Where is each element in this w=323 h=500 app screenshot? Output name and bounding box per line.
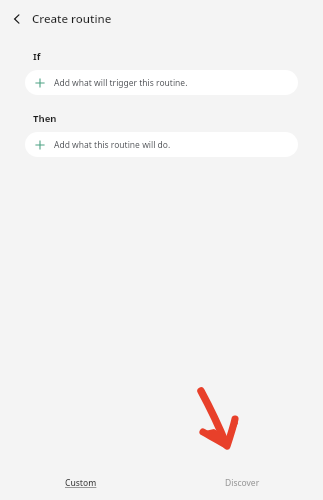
staticText: Discover (225, 477, 260, 489)
button[interactable]: Custom (0, 466, 161, 500)
staticText: Then (33, 112, 57, 125)
staticText: Add what will trigger this routine. (54, 77, 188, 89)
button[interactable]: Back (6, 8, 28, 30)
staticText: Create routine (32, 11, 112, 27)
button[interactable]: Add what will trigger this routine. (25, 70, 298, 95)
staticText: Custom (65, 477, 97, 489)
button[interactable]: Discover (161, 466, 323, 500)
button[interactable]: Add what this routine will do. (25, 132, 298, 157)
staticText: If (33, 50, 41, 63)
staticText: Add what this routine will do. (54, 139, 171, 151)
